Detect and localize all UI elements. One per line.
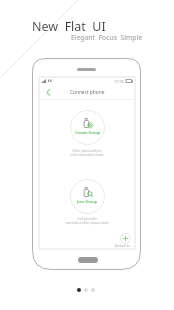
staticText: Invite frie... bbox=[115, 244, 132, 248]
staticText: New Flat UI bbox=[32, 18, 106, 35]
button[interactable]: Create Group bbox=[70, 110, 105, 145]
button[interactable]: Back bbox=[42, 87, 53, 98]
staticText: Connect phone bbox=[70, 89, 105, 96]
staticText: Elegant Focus Simple bbox=[71, 33, 143, 42]
staticText: I will join in the connections other pho… bbox=[39, 217, 135, 225]
staticText: Join Group bbox=[77, 199, 98, 204]
button[interactable]: Join Group bbox=[70, 179, 105, 214]
staticText: Create Group bbox=[75, 130, 101, 135]
staticText: 11:19 bbox=[114, 79, 124, 84]
button[interactable]: Invite friends bbox=[120, 233, 131, 244]
staticText: Other phones will join in the connection… bbox=[39, 149, 135, 157]
